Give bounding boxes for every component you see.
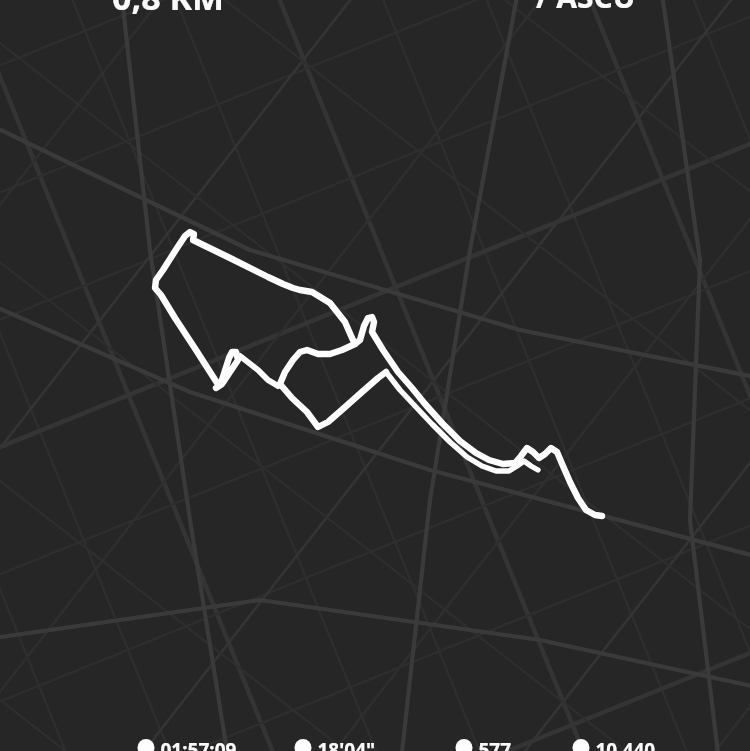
button[interactable]: Run route map <box>0 0 750 751</box>
